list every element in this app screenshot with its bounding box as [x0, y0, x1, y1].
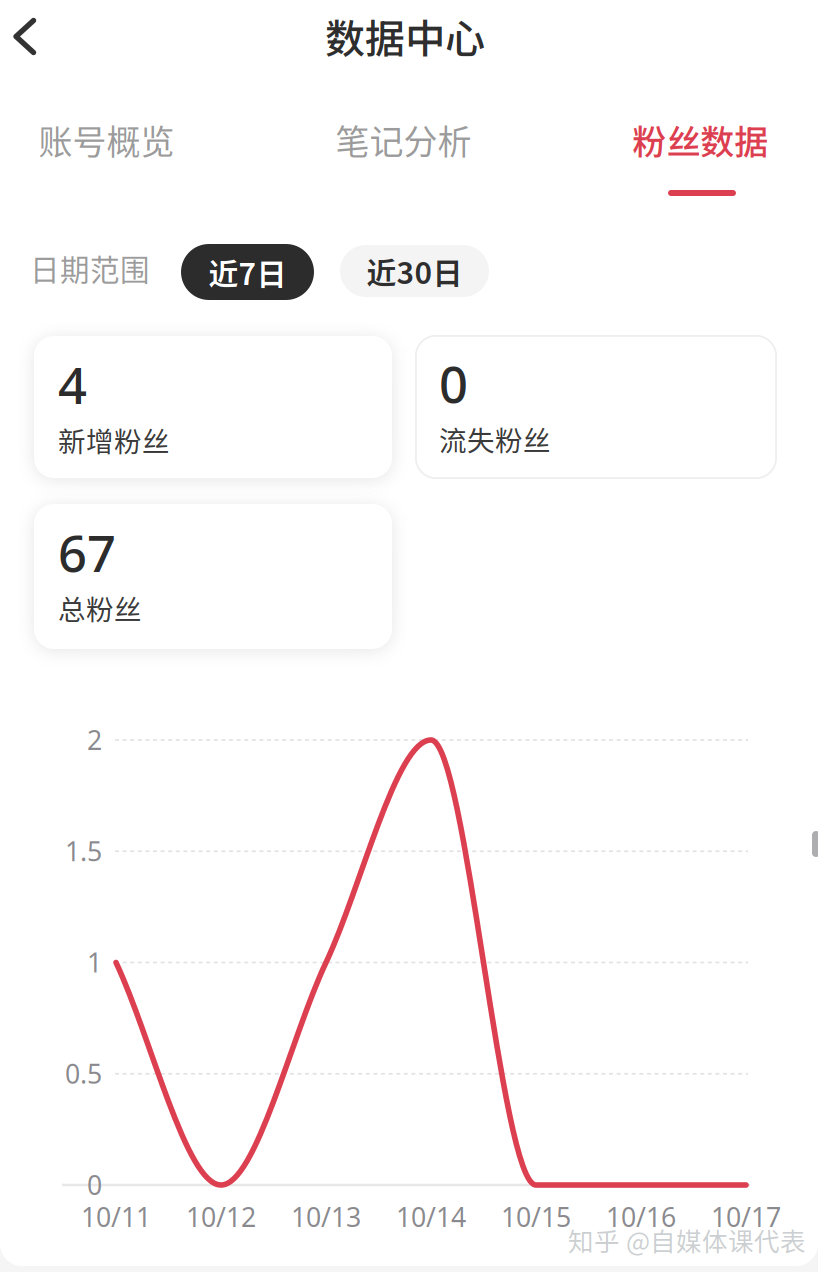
- button[interactable]: 笔记分析: [255, 115, 552, 199]
- staticText: 近30日: [366, 249, 462, 293]
- staticText: 0: [439, 350, 468, 417]
- staticText: 总粉丝: [58, 588, 142, 628]
- button[interactable]: Back: [0, 1, 53, 73]
- staticText: 日期范围: [30, 247, 150, 289]
- staticText: 0: [87, 1167, 102, 1202]
- button[interactable]: 近7日: [181, 244, 314, 300]
- staticText: 10/12: [186, 1199, 256, 1234]
- staticText: 数据中心: [325, 7, 485, 65]
- staticText: 1: [87, 944, 102, 980]
- staticText: 新增粉丝: [58, 420, 170, 460]
- button[interactable]: 67: [34, 504, 392, 649]
- staticText: 4: [58, 351, 87, 418]
- staticText: 流失粉丝: [439, 419, 551, 459]
- staticText: 0.5: [65, 1056, 102, 1091]
- staticText: 10/13: [291, 1199, 361, 1234]
- staticText: 10/17: [711, 1199, 781, 1234]
- staticText: 67: [58, 519, 116, 586]
- button[interactable]: 粉丝数据: [552, 115, 818, 199]
- staticText: 10/16: [606, 1199, 676, 1234]
- staticText: 知乎 @自媒体课代表: [568, 1221, 806, 1258]
- staticText: 2: [87, 722, 102, 757]
- button[interactable]: 账号概览: [0, 115, 255, 199]
- staticText: 10/14: [396, 1199, 466, 1234]
- staticText: 1.5: [65, 833, 102, 869]
- staticText: 近7日: [208, 250, 286, 294]
- staticText: 账号概览: [38, 115, 174, 164]
- staticText: 粉丝数据: [632, 115, 768, 164]
- staticText: 10/11: [81, 1199, 151, 1234]
- staticText: 笔记分析: [335, 115, 471, 164]
- button[interactable]: 近30日: [340, 245, 489, 297]
- button[interactable]: 4: [34, 336, 392, 478]
- button[interactable]: 0: [415, 335, 777, 479]
- staticText: 10/15: [501, 1199, 571, 1234]
